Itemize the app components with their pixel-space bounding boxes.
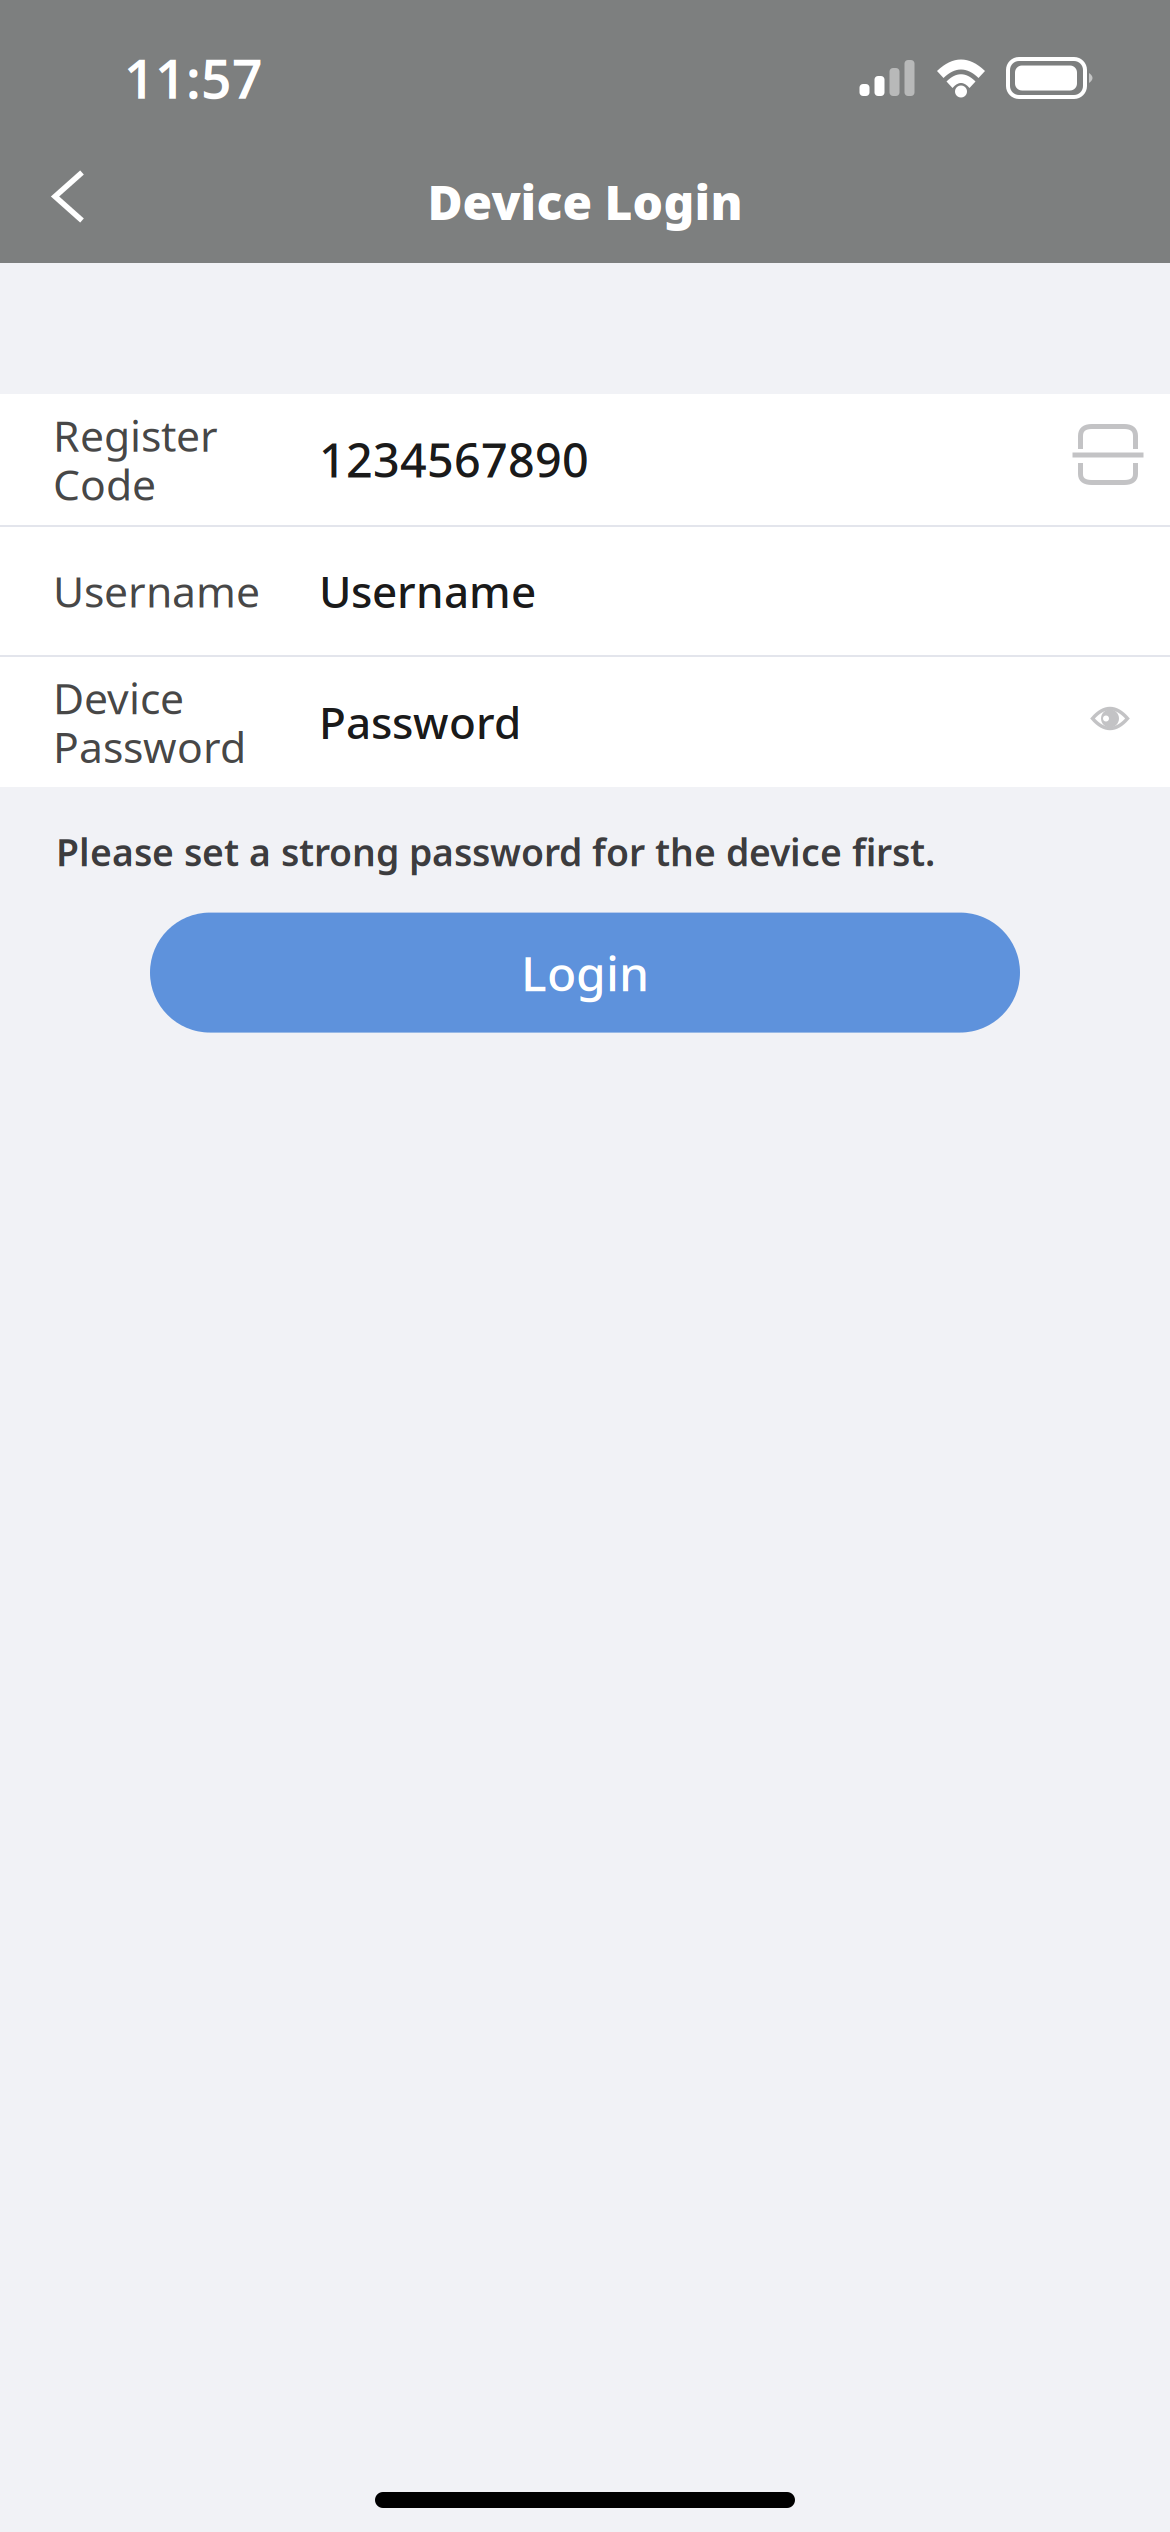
staticText: Password <box>319 693 521 751</box>
staticText: Username <box>319 562 536 620</box>
staticText: Code <box>53 455 156 512</box>
staticText: Password <box>53 718 246 775</box>
button[interactable]: Scan register code <box>1064 424 1153 495</box>
button[interactable]: Back <box>0 157 121 253</box>
staticText: 11:57 <box>124 43 263 113</box>
staticText: 1234567890 <box>319 428 589 490</box>
button[interactable]: Login <box>150 913 1020 1033</box>
staticText: Device Login <box>427 170 742 233</box>
button[interactable]: Show password <box>1058 706 1153 738</box>
staticText: Device <box>53 669 184 726</box>
staticText: Register <box>53 407 218 463</box>
staticText: Please set a strong password for the dev… <box>56 827 935 877</box>
staticText: Username <box>53 563 260 619</box>
staticText: Login <box>521 941 649 1004</box>
